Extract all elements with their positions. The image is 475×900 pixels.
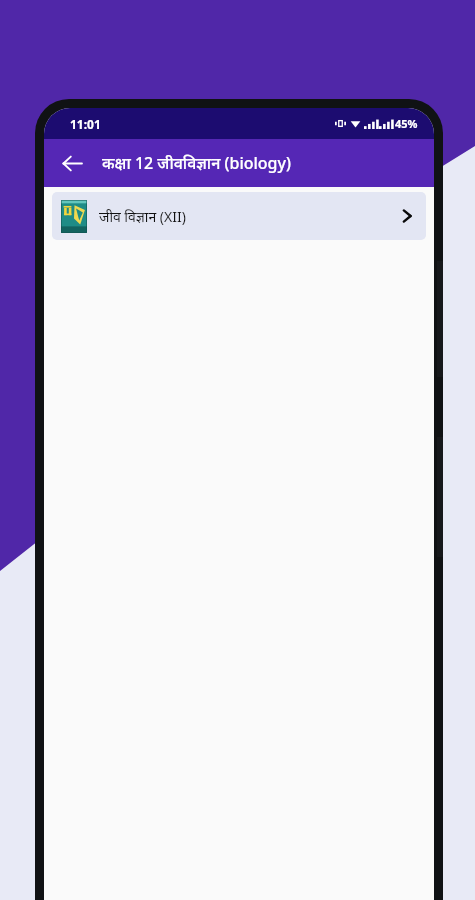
- staticText: 45%: [395, 116, 418, 131]
- staticText: कक्षा 12 जीवविज्ञान (biology): [102, 152, 291, 174]
- staticText: 11:01: [70, 116, 101, 132]
- staticText: जीव विज्ञान (XII): [99, 207, 186, 226]
- button[interactable]: Back: [52, 143, 92, 183]
- button[interactable]: जीव विज्ञान (XII): [52, 192, 426, 240]
